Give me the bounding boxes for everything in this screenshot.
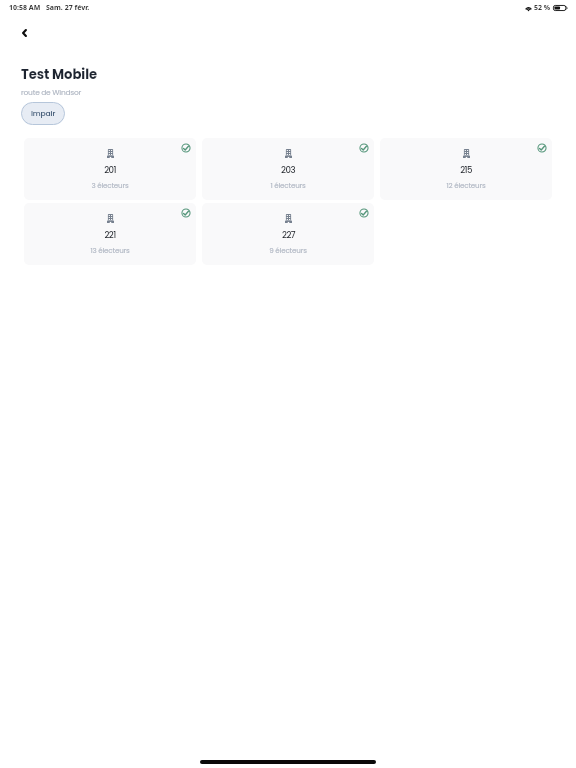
staticText: Sam. 27 févr. <box>46 3 90 13</box>
staticText: 52 % <box>534 3 551 13</box>
staticText: 12 électeurs <box>446 180 486 190</box>
staticText: Impair <box>31 108 56 119</box>
staticText: 215 <box>460 164 472 176</box>
button[interactable]: 221 <box>24 203 196 265</box>
button[interactable]: 201 <box>24 138 196 200</box>
staticText: 10:58 AM <box>9 3 41 13</box>
staticText: route de Windsor <box>21 87 82 97</box>
staticText: 13 électeurs <box>90 245 130 255</box>
staticText: 203 <box>281 164 295 176</box>
button[interactable]: 227 <box>202 203 374 265</box>
staticText: 1 électeurs <box>270 180 306 190</box>
staticText: 3 électeurs <box>91 180 129 190</box>
button[interactable]: Back <box>12 21 36 45</box>
staticText: 227 <box>282 229 295 241</box>
staticText: Test Mobile <box>21 65 98 83</box>
staticText: 9 électeurs <box>269 245 307 255</box>
staticText: 221 <box>104 229 116 241</box>
button[interactable]: 203 <box>202 138 374 200</box>
staticText: 201 <box>104 164 116 176</box>
button[interactable]: 215 <box>380 138 552 200</box>
button[interactable]: Impair <box>21 102 65 125</box>
